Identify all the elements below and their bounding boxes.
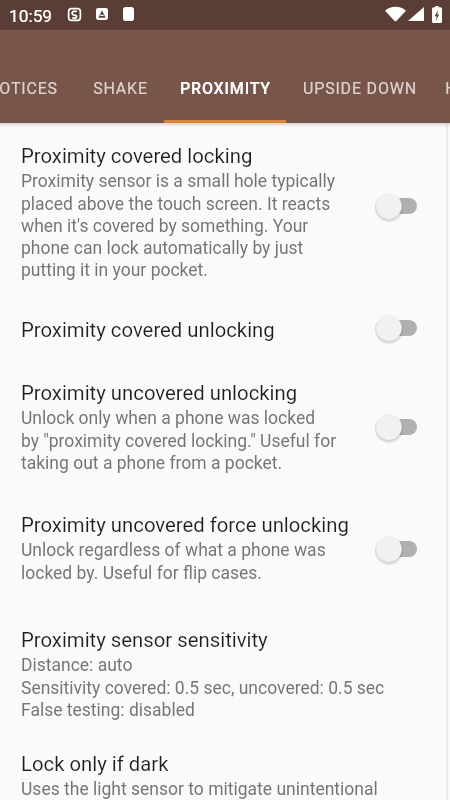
button[interactable]: Proximity uncovered unlocking xyxy=(0,367,450,487)
staticText: Unlock regardless of what a phone was lo… xyxy=(21,540,326,583)
button[interactable]: Proximity covered unlocking xyxy=(0,304,450,356)
staticText: Unlock only when a phone was locked by "… xyxy=(21,408,337,473)
button[interactable]: Toggle Proximity uncovered force unlocki… xyxy=(372,528,430,570)
button[interactable]: Proximity covered locking xyxy=(0,130,450,295)
staticText: Uses the light sensor to mitigate uninte… xyxy=(21,779,378,800)
button[interactable]: Proximity uncovered force unlocking xyxy=(0,499,450,597)
button[interactable]: Toggle Proximity covered locking xyxy=(372,185,430,227)
staticText: SHAKE xyxy=(93,79,148,98)
button[interactable]: PROXIMITY xyxy=(164,30,286,122)
button[interactable]: Lock only if dark xyxy=(0,738,450,800)
staticText: Proximity sensor is a small hole typical… xyxy=(21,171,336,280)
staticText: Proximity uncovered unlocking xyxy=(21,381,298,405)
staticText: NOTICES xyxy=(0,79,58,98)
staticText: Proximity uncovered force unlocking xyxy=(21,513,349,537)
button[interactable]: Proximity sensor sensitivity xyxy=(0,614,450,734)
staticText: Proximity sensor sensitivity xyxy=(21,628,268,652)
staticText: Proximity covered unlocking xyxy=(21,318,275,342)
button[interactable]: NOTICES xyxy=(0,30,83,122)
staticText: UPSIDE DOWN xyxy=(303,79,417,98)
button[interactable]: Toggle Proximity covered unlocking xyxy=(372,307,430,349)
button[interactable]: SHAKE xyxy=(75,30,165,122)
staticText: Proximity covered locking xyxy=(21,144,253,168)
staticText: 10:59 xyxy=(9,6,53,26)
button[interactable]: UPSIDE DOWN xyxy=(284,30,436,122)
staticText: Lock only if dark xyxy=(21,752,169,776)
staticText: Distance: auto Sensitivity covered: 0.5 … xyxy=(21,655,385,720)
button[interactable]: HEADSET xyxy=(422,30,450,122)
staticText: HEADSET xyxy=(445,79,450,98)
button[interactable]: Toggle Proximity uncovered unlocking xyxy=(372,406,430,448)
staticText: PROXIMITY xyxy=(180,79,271,98)
